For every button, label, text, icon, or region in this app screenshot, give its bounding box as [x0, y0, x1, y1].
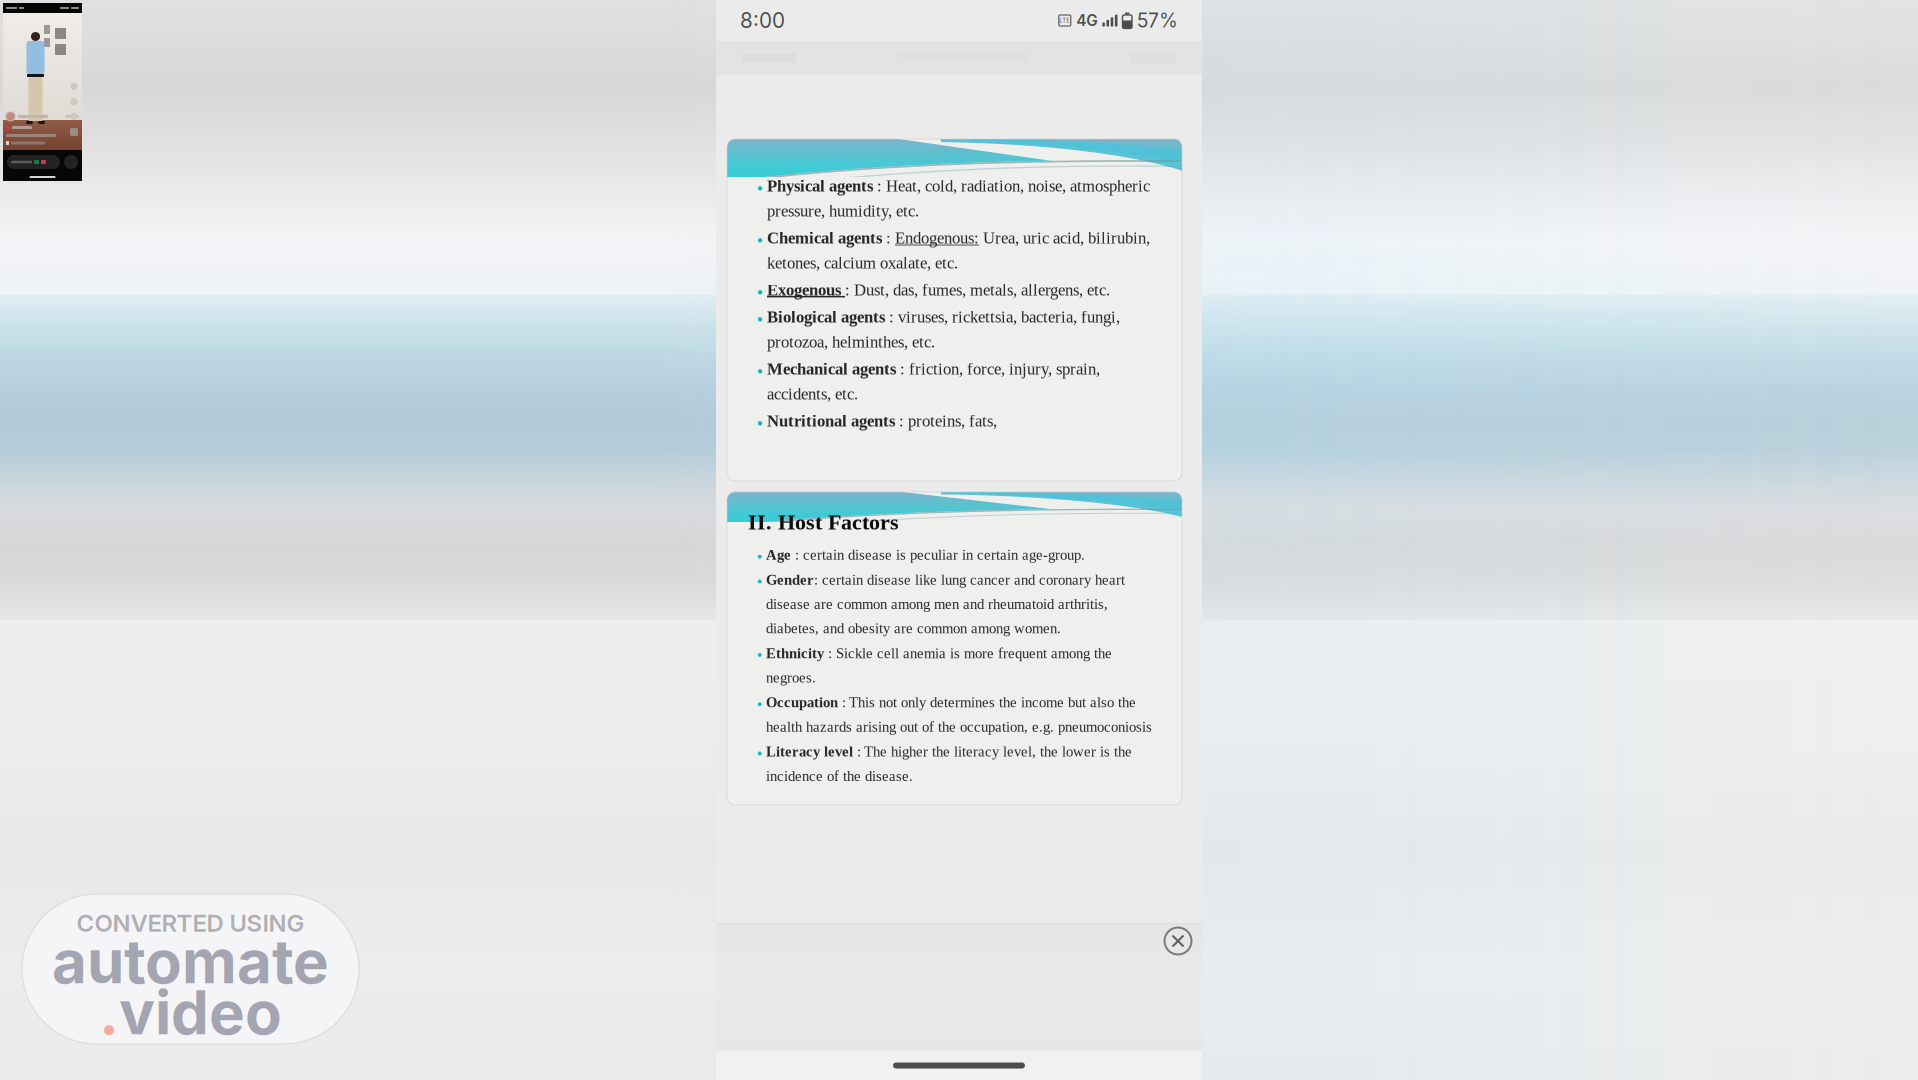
staticText: automate: [52, 925, 329, 998]
staticText: Occupation : This not only determines th…: [766, 694, 1152, 735]
staticText: LTE: [1059, 17, 1070, 24]
staticText: Physical agents : Heat, cold, radiation,…: [767, 177, 1150, 220]
staticText: ●: [757, 551, 762, 561]
staticText: ●: [757, 699, 762, 709]
button[interactable]: Close ad: [1159, 922, 1197, 960]
staticText: Literacy level : The higher the literacy…: [766, 744, 1132, 784]
staticText: Age : certain disease is peculiar in cer…: [766, 547, 1085, 563]
staticText: ●: [757, 417, 763, 428]
staticText: ●: [757, 650, 762, 660]
staticText: ●: [757, 313, 763, 324]
staticText: 8:00: [740, 8, 785, 33]
staticText: 4G: [1076, 11, 1097, 30]
staticText: video: [119, 976, 282, 1049]
staticText: ●: [757, 576, 762, 586]
staticText: Ethnicity : Sickle cell anemia is more f…: [766, 645, 1112, 685]
staticText: CONVERTED USING: [76, 908, 304, 937]
staticText: Nutritional agents : proteins, fats,: [767, 412, 997, 430]
staticText: ●: [757, 286, 763, 297]
staticText: .: [99, 976, 119, 1049]
staticText: ●: [757, 748, 762, 758]
staticText: Exogenous : Dust, das, fumes, metals, al…: [767, 281, 1110, 299]
staticText: Biological agents : viruses, rickettsia,…: [767, 308, 1120, 351]
staticText: 57%: [1137, 9, 1178, 32]
staticText: Gender: certain disease like lung cancer…: [766, 572, 1125, 636]
staticText: ●: [757, 182, 763, 193]
staticText: Chemical agents : Endogenous: Urea, uric…: [767, 229, 1150, 272]
staticText: II. Host Factors: [748, 510, 899, 534]
staticText: ●: [757, 365, 763, 376]
staticText: Mechanical agents : friction, force, inj…: [767, 360, 1100, 403]
staticText: ●: [757, 234, 763, 245]
